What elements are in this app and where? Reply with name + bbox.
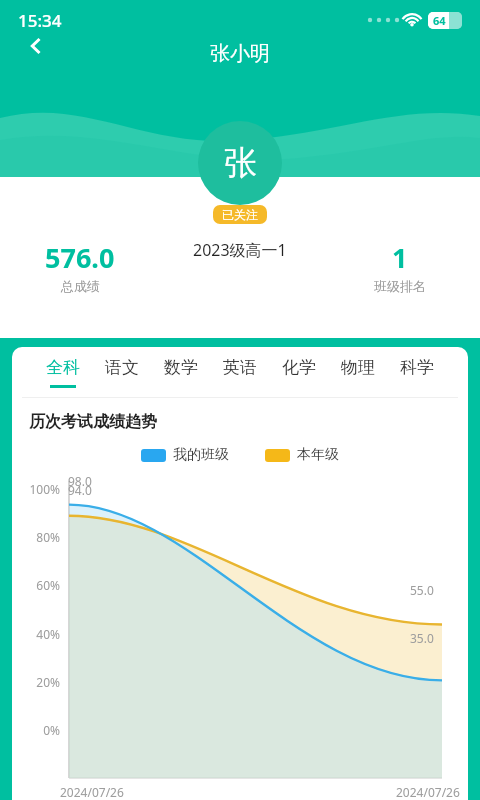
staticText: 本年级 bbox=[297, 446, 339, 464]
button[interactable]: 1 bbox=[320, 239, 480, 294]
button[interactable]: Back bbox=[12, 22, 60, 70]
staticText: 0% bbox=[18, 722, 60, 738]
staticText: 35.0 bbox=[410, 630, 434, 646]
button[interactable]: 张 bbox=[198, 121, 282, 205]
staticText: 总成绩 bbox=[61, 278, 100, 294]
staticText: 98.0 bbox=[68, 473, 92, 489]
button[interactable]: 全科 bbox=[34, 347, 92, 397]
button[interactable]: 本年级 bbox=[265, 446, 339, 464]
staticText: 已关注 bbox=[222, 207, 258, 222]
staticText: 15:34 bbox=[18, 9, 62, 32]
staticText: 我的班级 bbox=[173, 446, 229, 464]
staticText: 80% bbox=[18, 529, 60, 545]
staticText: 576.0 bbox=[45, 239, 115, 276]
staticText: 化学 bbox=[282, 357, 316, 378]
staticText: 张小明 bbox=[210, 41, 270, 66]
staticText: 科学 bbox=[400, 357, 434, 378]
button[interactable]: 科学 bbox=[387, 347, 446, 397]
button[interactable]: 数学 bbox=[151, 347, 210, 397]
staticText: 2024/07/26 bbox=[396, 784, 460, 800]
staticText: 数学 bbox=[164, 357, 198, 378]
button[interactable]: 物理 bbox=[328, 347, 387, 397]
staticText: 100% bbox=[18, 481, 60, 497]
staticText: 1 bbox=[392, 239, 408, 276]
button[interactable]: 化学 bbox=[269, 347, 328, 397]
staticText: 20% bbox=[18, 674, 60, 690]
staticText: 全科 bbox=[46, 357, 80, 378]
staticText: 40% bbox=[18, 626, 60, 642]
staticText: 班级排名 bbox=[374, 278, 426, 294]
staticText: 64 bbox=[433, 13, 446, 28]
staticText: 英语 bbox=[223, 357, 257, 378]
staticText: 60% bbox=[18, 577, 60, 593]
staticText: 94.0 bbox=[68, 482, 92, 498]
button[interactable]: 已关注 bbox=[213, 205, 267, 224]
staticText: 语文 bbox=[105, 357, 139, 378]
button[interactable]: 语文 bbox=[92, 347, 151, 397]
button[interactable]: 576.0 bbox=[0, 239, 160, 294]
button[interactable]: 我的班级 bbox=[141, 446, 229, 464]
staticText: 55.0 bbox=[410, 582, 434, 598]
staticText: 2023级高一1 bbox=[193, 239, 287, 261]
staticText: 2024/07/26 bbox=[60, 784, 124, 800]
staticText: 物理 bbox=[341, 357, 375, 378]
staticText: 历次考试成绩趋势 bbox=[29, 412, 157, 432]
staticText: 张 bbox=[224, 142, 257, 184]
button[interactable]: 英语 bbox=[210, 347, 269, 397]
